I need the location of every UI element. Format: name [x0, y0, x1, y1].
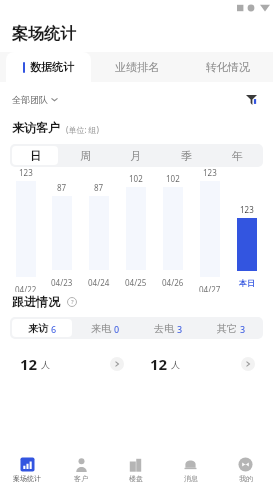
button[interactable]: 业绩排名 — [91, 52, 182, 82]
staticText: 123 — [203, 167, 217, 178]
button[interactable]: 周 — [62, 146, 108, 165]
staticText: 转化情况 — [206, 60, 250, 74]
button[interactable]: 日 — [12, 146, 58, 165]
button[interactable]: 全部团队 — [12, 94, 58, 105]
button[interactable]: 案场统计 — [0, 453, 54, 486]
staticText: 月 — [130, 149, 141, 163]
button[interactable]: 12 — [20, 347, 124, 381]
staticText: 全部团队 — [12, 94, 48, 105]
staticText: 人 — [171, 359, 180, 370]
staticText: 其它 — [217, 322, 237, 335]
button[interactable]: 年 — [214, 146, 261, 165]
staticText: 业绩排名 — [115, 60, 159, 74]
button[interactable]: 楼盘 — [108, 453, 163, 486]
staticText: 案场统计 — [13, 474, 41, 483]
staticText: (单位: 组) — [66, 124, 100, 135]
staticText: 季 — [181, 149, 192, 163]
staticText: 102 — [129, 173, 143, 184]
staticText: 102 — [166, 173, 180, 184]
staticText: 04/23 — [51, 277, 73, 288]
staticText: 04/22 — [15, 284, 37, 292]
staticText: 去电 — [154, 322, 174, 335]
staticText: 04/24 — [88, 277, 110, 288]
staticText: 消息 — [184, 474, 198, 483]
button[interactable]: 来访 — [12, 319, 72, 337]
staticText: ? — [71, 298, 74, 306]
staticText: 楼盘 — [129, 474, 143, 483]
staticText: 周 — [80, 149, 91, 163]
button[interactable]: 转化情况 — [182, 52, 273, 82]
staticText: 人 — [41, 359, 50, 370]
staticText: 来电 — [91, 322, 111, 335]
staticText: 3 — [240, 323, 246, 335]
staticText: 0 — [114, 323, 120, 335]
staticText: 来访 — [28, 322, 48, 335]
button[interactable]: Help — [66, 296, 78, 308]
button[interactable]: 客户 — [54, 453, 108, 486]
button[interactable]: 季 — [163, 146, 210, 165]
button[interactable]: 消息 — [163, 453, 218, 486]
staticText: 客户 — [74, 474, 88, 483]
staticText: 87 — [94, 182, 104, 193]
button[interactable]: Filter — [241, 89, 261, 109]
staticText: 12 — [150, 354, 168, 374]
staticText: 123 — [240, 204, 254, 215]
staticText: 12 — [20, 354, 38, 374]
staticText: 数据统计 — [30, 60, 74, 74]
staticText: 本日 — [239, 278, 255, 288]
staticText: 6 — [51, 323, 57, 335]
staticText: 3 — [177, 323, 183, 335]
staticText: 日 — [30, 149, 41, 163]
button[interactable]: 来电 — [76, 319, 135, 337]
staticText: 87 — [57, 182, 67, 193]
staticText: 案场统计 — [12, 24, 76, 44]
staticText: 04/26 — [162, 277, 184, 288]
staticText: 我的 — [239, 474, 253, 483]
staticText: 跟进情况 — [12, 294, 60, 309]
button[interactable]: 其它 — [202, 319, 261, 337]
staticText: 年 — [232, 149, 243, 163]
button[interactable]: 数据统计 — [6, 52, 91, 82]
button[interactable]: 12 — [150, 347, 255, 381]
staticText: 123 — [19, 167, 33, 178]
button[interactable]: 去电 — [139, 319, 198, 337]
staticText: 04/27 — [199, 284, 221, 292]
button[interactable]: 月 — [112, 146, 159, 165]
staticText: 04/25 — [125, 277, 147, 288]
staticText: 来访客户 — [12, 120, 60, 135]
button[interactable]: 我的 — [218, 453, 273, 486]
